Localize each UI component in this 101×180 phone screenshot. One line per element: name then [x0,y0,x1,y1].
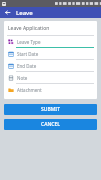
staticText: Attachment [17,87,42,93]
staticText: SUBMIT [41,106,60,113]
button[interactable]: Leave Type [4,36,97,48]
button[interactable]: Start Date [4,48,97,60]
button[interactable]: SUBMIT [4,104,97,115]
staticText: Note [17,75,28,81]
button[interactable]: End Date [4,60,97,72]
staticText: Leave Type [17,39,41,45]
staticText: Leave Application [8,25,50,32]
button[interactable]: Note [4,72,97,84]
staticText: CANCEL [41,121,60,128]
button[interactable]: Attachment [4,84,97,95]
staticText: Start Date [17,51,39,57]
staticText: End Date [17,63,37,69]
button[interactable]: Back [3,8,12,17]
staticText: Leave [16,9,33,17]
button[interactable]: CANCEL [4,119,97,130]
